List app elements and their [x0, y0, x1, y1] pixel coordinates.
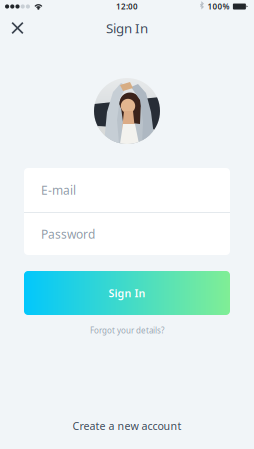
- button[interactable]: Password: [24, 213, 230, 255]
- staticText: Create a new account: [72, 419, 181, 433]
- staticText: 100%: [207, 1, 229, 12]
- staticText: Sign In: [106, 19, 148, 37]
- button[interactable]: Forgot your details?: [82, 321, 172, 340]
- staticText: Sign In: [108, 286, 145, 300]
- staticText: 12:00: [116, 1, 138, 12]
- staticText: Password: [41, 226, 95, 242]
- staticText: Forgot your details?: [90, 325, 164, 336]
- button[interactable]: E-mail: [24, 168, 230, 212]
- button[interactable]: Create a new account: [62, 413, 191, 439]
- staticText: E-mail: [41, 182, 76, 198]
- button[interactable]: Sign In: [24, 271, 230, 315]
- button[interactable]: Close: [0, 16, 35, 40]
